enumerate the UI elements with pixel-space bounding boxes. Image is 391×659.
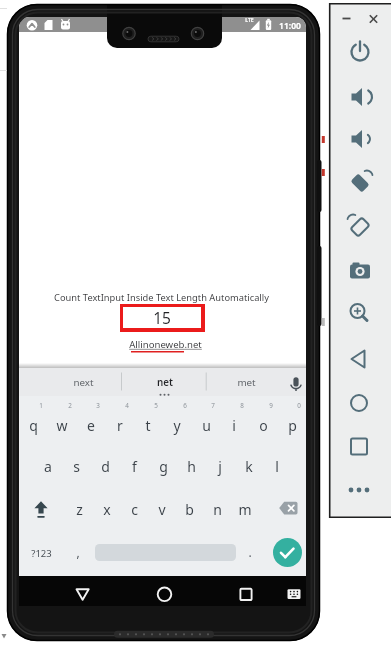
staticText: s (73, 457, 80, 476)
button[interactable] (340, 341, 380, 379)
button[interactable] (340, 253, 380, 291)
button[interactable] (340, 122, 380, 160)
staticText: 7 (211, 401, 215, 410)
staticText: u (202, 416, 211, 435)
staticText: 3 (96, 401, 100, 410)
button[interactable]: l (263, 452, 291, 480)
staticText: 9 (269, 401, 273, 410)
button[interactable]: z (66, 495, 92, 523)
staticText: o (259, 416, 268, 435)
staticText: 11:00 (279, 20, 301, 32)
staticText: z (76, 500, 83, 519)
button[interactable]: i (220, 411, 248, 439)
button[interactable]: u (192, 411, 220, 439)
button[interactable] (122, 368, 206, 397)
button[interactable]: s (62, 452, 90, 480)
staticText: v (158, 500, 166, 519)
button[interactable]: a (34, 452, 62, 480)
staticText: y (173, 416, 181, 435)
staticText: 6 (183, 401, 187, 410)
button[interactable] (19, 368, 121, 397)
button[interactable]: ?123 (26, 544, 56, 563)
staticText: e (87, 416, 95, 435)
button[interactable] (229, 579, 263, 605)
button[interactable]: , (69, 540, 87, 564)
button[interactable]: j (206, 452, 234, 480)
button[interactable] (148, 579, 182, 605)
staticText: h (187, 457, 196, 476)
staticText: a (44, 457, 52, 476)
staticText: w (56, 416, 68, 435)
button[interactable] (66, 579, 100, 605)
staticText: r (117, 416, 123, 435)
staticText: LTE (245, 17, 254, 24)
staticText: t (145, 416, 151, 435)
staticText: i (232, 416, 236, 435)
button[interactable]: o (249, 411, 277, 439)
button[interactable] (340, 209, 380, 247)
staticText: g (159, 457, 168, 476)
staticText: 8 (240, 401, 244, 410)
button[interactable]: y (163, 411, 191, 439)
staticText: met (237, 376, 256, 389)
staticText: net (157, 376, 173, 389)
button[interactable]: g (149, 452, 177, 480)
staticText: c (131, 500, 138, 519)
staticText: m (238, 500, 252, 519)
staticText: 15 (153, 307, 171, 328)
staticText: q (29, 416, 38, 435)
button[interactable] (207, 368, 287, 397)
staticText: Allinoneweb.net (129, 338, 202, 351)
button[interactable] (280, 579, 308, 605)
staticText: Count TextInput Inside Text Length Autom… (54, 291, 269, 304)
button[interactable] (340, 297, 380, 335)
staticText: p (288, 416, 297, 435)
staticText: d (101, 457, 110, 476)
button[interactable]: m (232, 495, 258, 523)
staticText: 0 (297, 401, 301, 410)
button[interactable]: e (77, 411, 105, 439)
button[interactable]: p (278, 411, 306, 439)
button[interactable]: w (48, 411, 76, 439)
button[interactable]: v (149, 495, 175, 523)
button[interactable] (340, 34, 380, 72)
staticText: 5 (154, 401, 158, 410)
button[interactable] (273, 538, 302, 567)
button[interactable]: c (121, 495, 147, 523)
button[interactable]: . (241, 540, 259, 564)
button[interactable] (26, 496, 56, 522)
button[interactable]: t (134, 411, 162, 439)
staticText: . (248, 544, 252, 560)
staticText: next (73, 376, 94, 389)
staticText: f (132, 457, 137, 476)
staticText: n (213, 500, 222, 519)
staticText: , (76, 544, 80, 560)
button[interactable] (340, 165, 380, 203)
button[interactable] (287, 368, 306, 397)
button[interactable]: q (19, 411, 47, 439)
button[interactable] (340, 472, 380, 510)
staticText: l (275, 457, 279, 476)
button[interactable] (340, 384, 380, 422)
button[interactable]: r (106, 411, 134, 439)
staticText: 2 (68, 401, 72, 410)
button[interactable]: Allinoneweb.net (105, 335, 225, 354)
button[interactable]: h (177, 452, 205, 480)
staticText: 1 (39, 401, 43, 410)
button[interactable] (340, 78, 380, 116)
button[interactable]: b (176, 495, 202, 523)
staticText: x (103, 500, 111, 519)
button[interactable]: k (235, 452, 263, 480)
staticText: ?123 (31, 547, 52, 560)
staticText: 4 (125, 401, 129, 410)
button[interactable]: x (94, 495, 120, 523)
staticText: b (185, 500, 194, 519)
button[interactable] (274, 496, 304, 522)
button[interactable] (340, 428, 380, 466)
staticText: j (218, 457, 222, 476)
button[interactable]: d (91, 452, 119, 480)
button[interactable]: n (204, 495, 230, 523)
staticText: k (245, 457, 253, 476)
button[interactable]: f (120, 452, 148, 480)
